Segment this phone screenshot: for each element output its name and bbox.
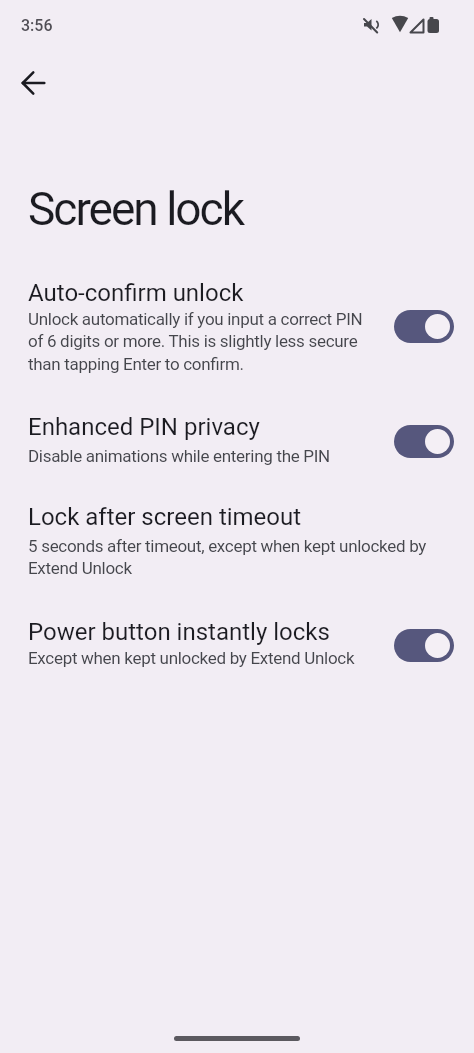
staticText: Power button instantly locks xyxy=(28,618,330,646)
staticText: 3:56 xyxy=(21,16,53,35)
staticText: Disable animations while entering the PI… xyxy=(28,446,330,466)
staticText: Except when kept unlocked by Extend Unlo… xyxy=(28,648,355,668)
staticText: Screen lock xyxy=(28,182,243,236)
staticText: Lock after screen timeout xyxy=(28,503,302,531)
button[interactable]: Enhanced PIN privacy xyxy=(28,413,454,466)
button[interactable]: Lock after screen timeout xyxy=(28,503,454,578)
staticText: Enhanced PIN privacy xyxy=(28,413,260,441)
button[interactable]: Auto-confirm unlock xyxy=(28,279,454,374)
button[interactable] xyxy=(394,425,454,458)
button[interactable] xyxy=(394,310,454,343)
button[interactable]: Power button instantly locks xyxy=(28,618,454,668)
button[interactable] xyxy=(174,1036,300,1041)
staticText: 5 seconds after timeout, except when kep… xyxy=(28,536,427,578)
staticText: Unlock automatically if you input a corr… xyxy=(28,309,363,374)
button[interactable] xyxy=(394,629,454,662)
button[interactable] xyxy=(10,60,56,106)
staticText: Auto-confirm unlock xyxy=(28,279,244,307)
